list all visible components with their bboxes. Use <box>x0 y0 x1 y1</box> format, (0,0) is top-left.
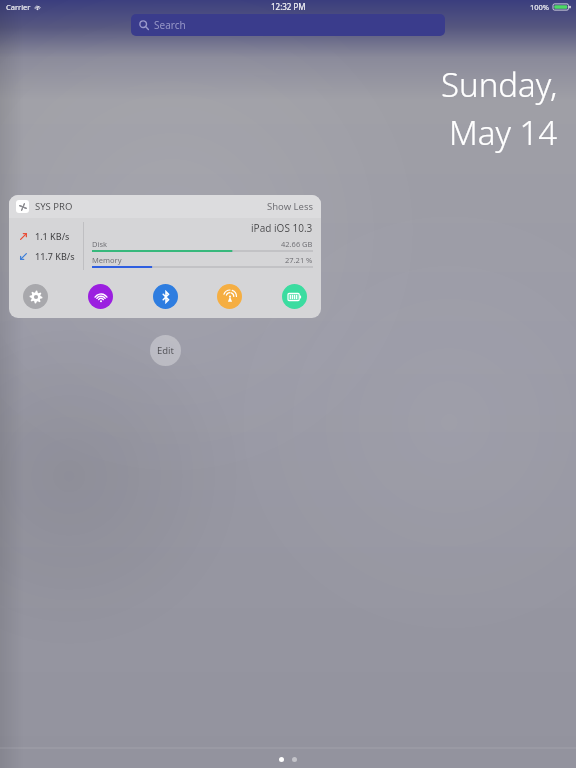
staticText: 42.66 GB <box>281 239 313 249</box>
staticText: 1.1 KB/s <box>35 230 70 242</box>
button[interactable]: Bluetooth <box>153 284 178 309</box>
staticText: Sunday, <box>441 62 558 107</box>
staticText: Disk <box>92 239 108 249</box>
staticText: SYS PRO <box>35 200 73 213</box>
button[interactable]: Battery <box>282 284 307 309</box>
staticText: 12:32 PM <box>271 1 306 12</box>
staticText: Search <box>154 18 186 32</box>
staticText: 11.7 KB/s <box>35 250 75 262</box>
button[interactable]: Search <box>131 14 445 36</box>
staticText: May 14 <box>449 110 558 155</box>
staticText: Memory <box>92 255 122 265</box>
button[interactable]: Edit <box>150 335 181 366</box>
button[interactable]: Settings <box>23 284 48 309</box>
staticText: Edit <box>157 344 175 357</box>
staticText: 100% <box>530 2 550 12</box>
staticText: Carrier <box>6 2 31 12</box>
staticText: Show Less <box>267 200 314 213</box>
button[interactable]: Show Less <box>267 200 314 213</box>
staticText: iPad iOS 10.3 <box>251 221 313 235</box>
staticText: 27.21 % <box>285 255 313 265</box>
button[interactable]: Cellular <box>217 284 242 309</box>
button[interactable]: Wi-Fi <box>88 284 113 309</box>
